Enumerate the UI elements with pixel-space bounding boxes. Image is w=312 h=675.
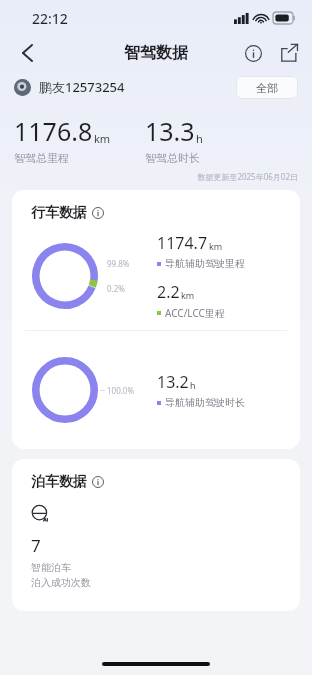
button[interactable]: Info (238, 38, 268, 68)
staticText: 7 (31, 534, 41, 557)
staticText: 100.0% (107, 385, 135, 396)
staticText: 13.3 (145, 114, 195, 148)
button[interactable]: Share (274, 38, 304, 68)
staticText: 泊入成功次数 (31, 576, 91, 589)
staticText: 智驾总里程 (14, 151, 69, 165)
staticText: km (181, 289, 195, 301)
staticText: ACC/LCC里程 (165, 306, 225, 320)
staticText: 泊车数据 (31, 473, 87, 491)
staticText: 导航辅助驾驶里程 (165, 257, 245, 270)
staticText: 数据更新至2025年06月02日 (0, 171, 298, 182)
staticText: 鹏友12573254 (39, 78, 125, 96)
staticText: 智能泊车 (31, 561, 71, 574)
staticText: 1176.8 (14, 114, 93, 148)
staticText: km (209, 240, 223, 252)
staticText: 2.2 (157, 281, 180, 303)
button[interactable]: 全部 (236, 76, 298, 99)
staticText: h (196, 131, 203, 146)
button[interactable]: Back (10, 36, 44, 70)
staticText: km (94, 131, 111, 146)
staticText: 99.8% (107, 258, 130, 269)
staticText: 行车数据 (31, 204, 87, 222)
staticText: h (190, 379, 196, 391)
staticText: 智驾数据 (124, 43, 188, 63)
staticText: 13.2 (157, 371, 189, 393)
staticText: 1174.7 (157, 232, 208, 254)
staticText: 导航辅助驾驶时长 (165, 396, 245, 409)
staticText: 0.2% (107, 283, 125, 294)
staticText: 智驾总时长 (145, 151, 200, 165)
staticText: 全部 (256, 81, 278, 95)
staticText: 22:12 (32, 9, 68, 28)
